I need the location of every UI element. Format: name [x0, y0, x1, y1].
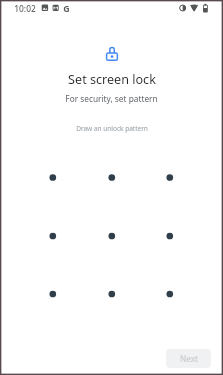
staticText: G: [63, 3, 70, 15]
staticText: 10:02: [14, 3, 36, 14]
staticText: Draw an unlock pattern: [76, 124, 148, 133]
staticText: Set screen lock: [68, 71, 156, 88]
staticText: For security, set pattern: [65, 93, 158, 104]
other: Screen lock: [0, 0, 223, 375]
staticText: Next: [180, 353, 198, 364]
button[interactable]: Pattern area: [29, 154, 193, 318]
button[interactable]: Next: [166, 349, 211, 368]
